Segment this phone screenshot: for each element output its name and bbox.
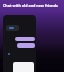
staticText: Chat with old and new friends: [3, 3, 58, 8]
